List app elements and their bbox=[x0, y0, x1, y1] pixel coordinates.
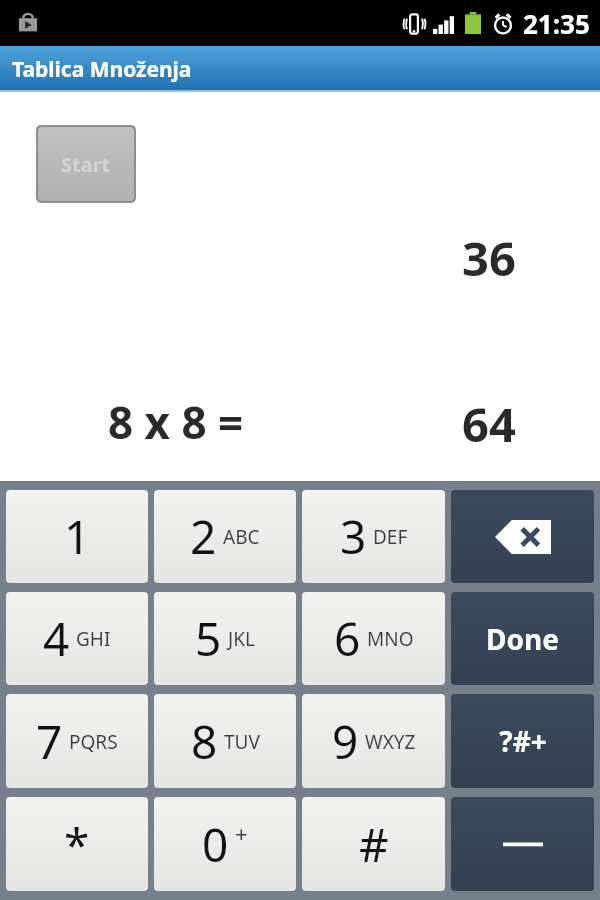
staticText: 6 bbox=[334, 607, 361, 670]
button[interactable]: 3 bbox=[302, 490, 445, 583]
staticText: GHI bbox=[76, 626, 111, 652]
staticText: * bbox=[64, 813, 90, 876]
staticText: Start bbox=[61, 151, 111, 178]
staticText: JKL bbox=[228, 626, 255, 652]
button[interactable]: Done bbox=[451, 592, 594, 685]
staticText: 9 bbox=[332, 710, 359, 773]
button[interactable]: Start bbox=[38, 127, 134, 201]
staticText: 8 x 8 = bbox=[108, 392, 244, 452]
staticText: 0 bbox=[202, 813, 229, 876]
staticText: 7 bbox=[36, 710, 63, 773]
staticText: ABC bbox=[223, 524, 260, 550]
staticText: 1 bbox=[64, 505, 91, 568]
button[interactable]: 4 bbox=[6, 592, 148, 685]
staticText: 64 bbox=[462, 392, 516, 456]
staticText: + bbox=[235, 818, 248, 848]
button[interactable]: 7 bbox=[6, 694, 148, 788]
button[interactable]: * bbox=[6, 797, 148, 891]
staticText: MNO bbox=[367, 626, 414, 652]
staticText: TUV bbox=[224, 729, 260, 755]
staticText: 3 bbox=[340, 505, 367, 568]
button[interactable]: 5 bbox=[154, 592, 296, 685]
staticText: 36 bbox=[462, 226, 516, 290]
button[interactable]: 6 bbox=[302, 592, 445, 685]
staticText: PQRS bbox=[69, 729, 118, 755]
staticText: 5 bbox=[195, 607, 222, 670]
button[interactable]: ?#+ bbox=[451, 694, 594, 788]
button[interactable]: Hide keyboard bbox=[451, 797, 594, 891]
staticText: 4 bbox=[43, 607, 70, 670]
button[interactable]: # bbox=[302, 797, 445, 891]
staticText: 2 bbox=[190, 505, 217, 568]
staticText: # bbox=[359, 813, 389, 876]
staticText: DEF bbox=[373, 524, 408, 550]
staticText: ?#+ bbox=[499, 722, 547, 760]
button[interactable]: Backspace bbox=[451, 490, 594, 583]
button[interactable]: 2 bbox=[154, 490, 296, 583]
button[interactable]: 9 bbox=[302, 694, 445, 788]
staticText: Done bbox=[486, 620, 559, 658]
staticText: 21:35 bbox=[523, 6, 590, 41]
button[interactable]: 1 bbox=[6, 490, 148, 583]
button[interactable]: 0 bbox=[154, 797, 296, 891]
staticText: Tablica Množenja bbox=[12, 55, 192, 84]
staticText: 8 bbox=[191, 710, 218, 773]
button[interactable]: 8 bbox=[154, 694, 296, 788]
staticText: WXYZ bbox=[365, 729, 416, 755]
